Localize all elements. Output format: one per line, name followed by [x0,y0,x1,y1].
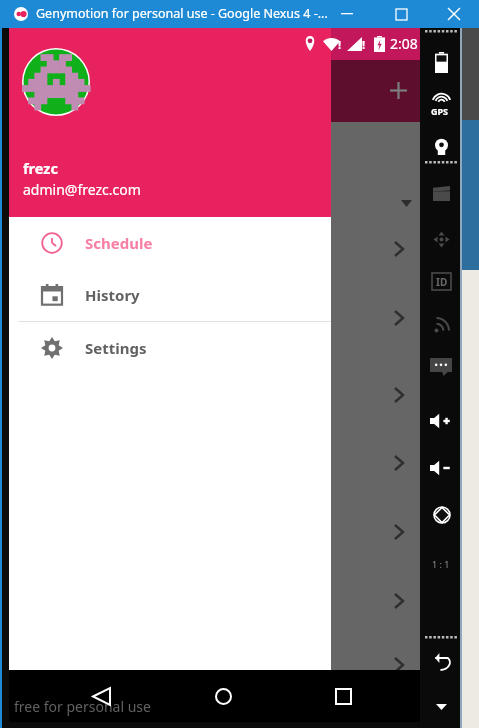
staticText: Genymotion for personal use - Google Nex… [36,5,328,22]
button[interactable]: Back [79,674,123,718]
button[interactable]: Open item [377,441,421,485]
button[interactable]: Open item [377,579,421,623]
button[interactable]: Home [201,674,245,718]
staticText: 1 : 1 [432,558,450,570]
button[interactable]: Close [432,0,476,28]
staticText: 2:08 [390,34,418,53]
button[interactable]: Schedule [9,217,331,269]
button[interactable]: Open item [377,296,421,340]
staticText: Schedule [85,233,153,253]
staticText: ID [436,275,448,289]
button[interactable]: History [9,269,331,321]
staticText: ! [338,37,342,52]
staticText: ! [362,37,366,52]
staticText: Settings [85,338,147,358]
staticText: admin@frezc.com [23,180,141,199]
button[interactable]: Recents [321,674,365,718]
button[interactable]: Add [374,66,422,114]
staticText: free for personal use [14,697,151,716]
staticText: GPS [431,105,449,117]
button[interactable]: Maximize [379,0,423,28]
button[interactable]: Settings [9,322,331,374]
button[interactable]: Open item [377,510,421,554]
button[interactable]: Open item [377,227,421,271]
staticText: History [85,285,140,305]
button[interactable]: Minimize [325,0,369,28]
staticText: frezc [23,158,58,178]
button[interactable]: Open item [377,373,421,417]
button[interactable]: Open item [377,643,421,687]
